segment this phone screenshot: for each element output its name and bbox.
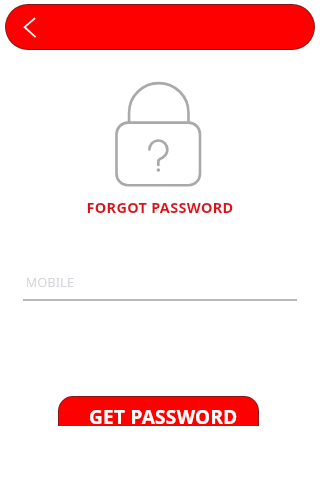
button[interactable]: GET PASSWORD xyxy=(58,396,259,426)
button[interactable]: Back xyxy=(13,10,49,44)
staticText: FORGOT PASSWORD xyxy=(0,197,320,217)
staticText: MOBILE xyxy=(26,274,75,291)
staticText: GET PASSWORD xyxy=(89,404,238,426)
